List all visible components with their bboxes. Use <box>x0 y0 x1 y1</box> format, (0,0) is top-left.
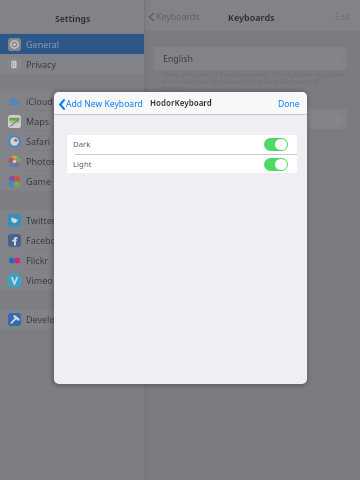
staticText: Light <box>73 159 92 170</box>
button[interactable]: Keyboards <box>149 11 200 23</box>
button[interactable]: Add New Keyboard... <box>154 109 347 129</box>
button[interactable]: Edit <box>335 11 351 23</box>
button[interactable]: General <box>0 34 145 54</box>
button[interactable]: iCloud <box>0 91 145 111</box>
staticText: Dark <box>73 139 91 150</box>
staticText: iCloud <box>26 95 53 107</box>
staticText: Flickr <box>26 254 49 266</box>
staticText: Privacy <box>26 58 57 70</box>
button[interactable]: Flickr <box>0 250 145 270</box>
staticText: Privacy <box>161 84 183 93</box>
staticText: English <box>163 53 193 65</box>
staticText: Vimeo <box>26 274 53 286</box>
button[interactable]: Dark <box>67 135 297 154</box>
staticText: Add New Keyboard... <box>163 113 249 125</box>
button[interactable]: Twitter <box>0 210 145 230</box>
staticText: Keyboards <box>156 11 200 23</box>
staticText: Developer <box>26 313 70 325</box>
button[interactable]: Maps <box>0 111 145 131</box>
button[interactable]: Privacy <box>0 54 145 74</box>
staticText: Add New Keyboard <box>66 98 143 110</box>
button[interactable]: Add New Keyboard <box>59 98 143 110</box>
staticText: HodorKeyboard <box>150 98 212 109</box>
button[interactable]: Developer <box>0 309 145 329</box>
button[interactable]: Done <box>278 98 300 110</box>
button[interactable]: Photos <box>0 151 145 171</box>
button[interactable]: Vimeo <box>0 270 145 290</box>
staticText: Settings <box>55 13 91 25</box>
staticText: Safari <box>26 135 51 147</box>
button[interactable]: Facebook <box>0 230 145 250</box>
button[interactable]: Safari <box>0 131 145 151</box>
staticText: Game Center <box>26 175 82 187</box>
staticText: Keyboards <box>228 11 275 23</box>
button[interactable]: Light <box>67 155 297 173</box>
staticText: Facebook <box>26 234 67 246</box>
button[interactable]: English <box>154 47 347 70</box>
staticText: Maps <box>26 115 50 127</box>
button[interactable]: Game Center <box>0 171 145 191</box>
staticText: General <box>26 38 60 50</box>
staticText: Twitter <box>26 214 56 226</box>
staticText: Photos <box>26 155 56 167</box>
